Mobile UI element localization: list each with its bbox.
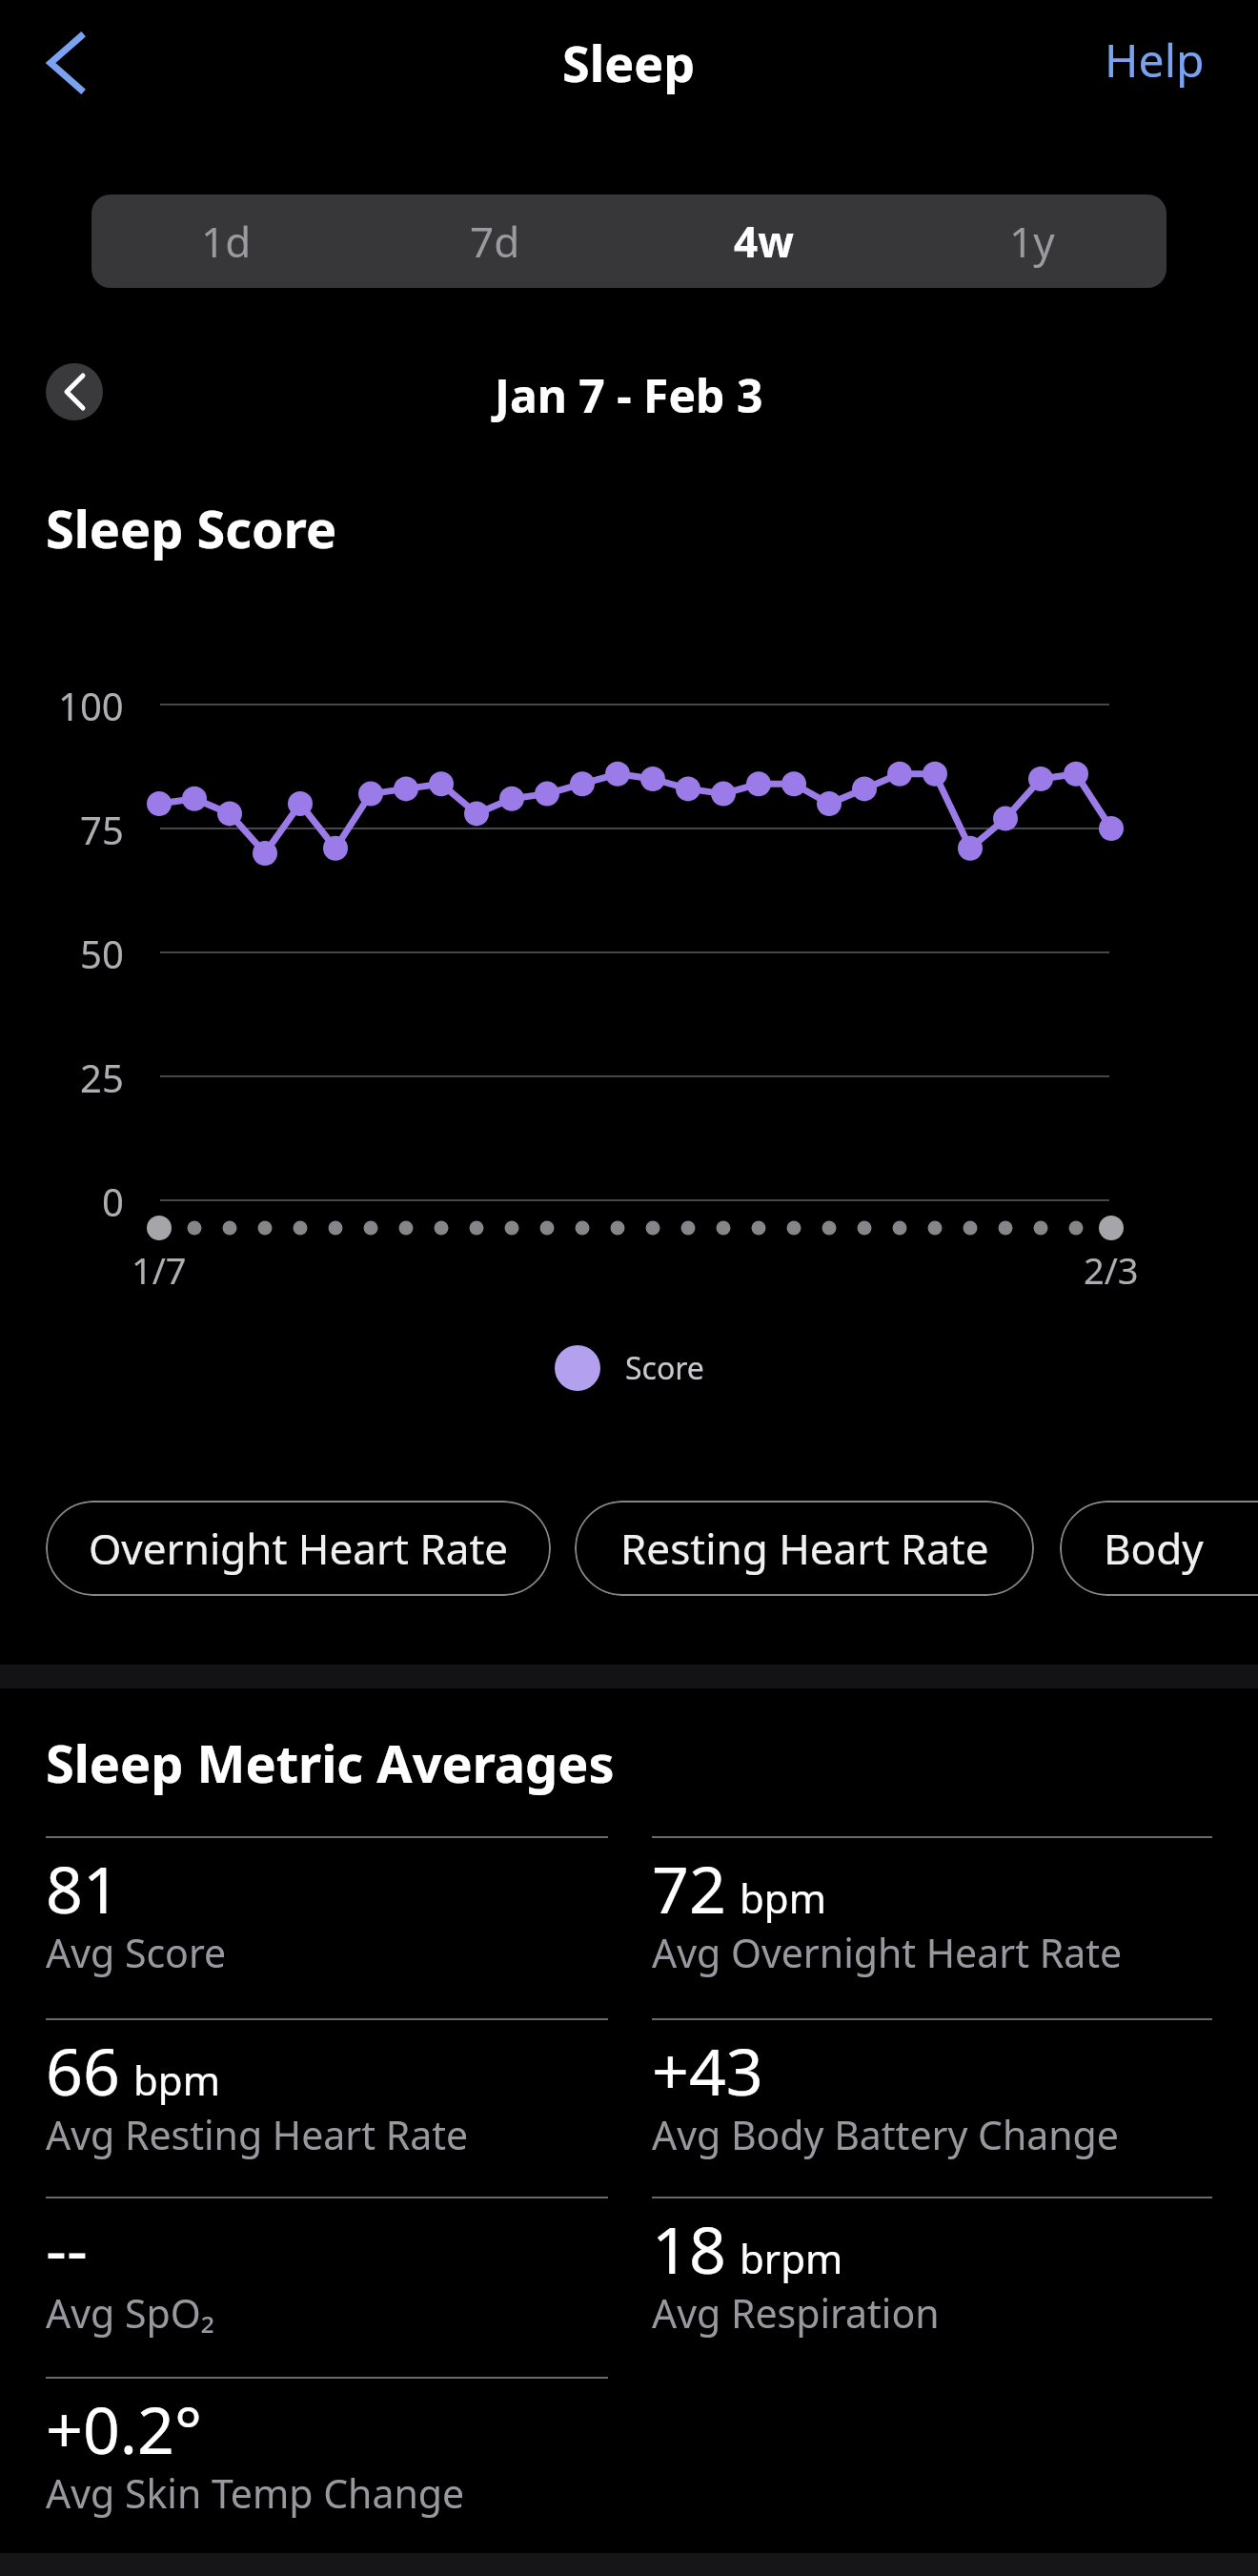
staticText: 18: [652, 2204, 726, 2293]
button[interactable]: 4w: [629, 194, 898, 288]
staticText: 100: [58, 680, 124, 729]
staticText: 0: [102, 1176, 124, 1225]
staticText: +43: [652, 2026, 763, 2115]
staticText: Score: [625, 1347, 704, 1389]
staticText: 4w: [734, 213, 794, 270]
staticText: 81: [46, 1844, 120, 1932]
staticText: Sleep Metric Averages: [46, 1728, 615, 1798]
staticText: Avg Body Battery Change: [652, 2108, 1119, 2161]
staticText: --: [46, 2204, 88, 2293]
staticText: Avg SpO₂: [46, 2286, 214, 2340]
staticText: Resting Heart Rate: [620, 1520, 989, 1577]
staticText: 50: [80, 928, 124, 977]
staticText: Avg Respiration: [652, 2286, 940, 2340]
staticText: Sleep: [562, 29, 696, 96]
staticText: Sleep Score: [46, 493, 337, 563]
staticText: 1/7: [132, 1245, 187, 1295]
staticText: Overnight Heart Rate: [89, 1520, 509, 1577]
staticText: brpm: [740, 2231, 843, 2285]
staticText: 1d: [201, 213, 252, 270]
button[interactable]: 1d: [91, 194, 360, 288]
staticText: Avg Resting Heart Rate: [46, 2108, 469, 2161]
button[interactable]: 7d: [360, 194, 629, 288]
staticText: 25: [80, 1052, 124, 1101]
staticText: 7d: [470, 213, 520, 270]
staticText: Avg Overnight Heart Rate: [652, 1926, 1123, 1979]
staticText: Avg Skin Temp Change: [46, 2466, 465, 2520]
staticText: 1y: [1009, 213, 1055, 270]
button[interactable]: [46, 363, 103, 420]
staticText: 2/3: [1084, 1245, 1139, 1295]
button[interactable]: Help: [1105, 29, 1205, 91]
staticText: 72: [652, 1844, 726, 1932]
button[interactable]: Body Battery: [1060, 1501, 1258, 1596]
button[interactable]: Resting Heart Rate: [575, 1501, 1034, 1596]
staticText: 66: [46, 2026, 120, 2115]
staticText: bpm: [740, 1871, 826, 1925]
button[interactable]: 1y: [898, 194, 1167, 288]
staticText: Avg Score: [46, 1926, 227, 1979]
button[interactable]: [29, 17, 101, 109]
staticText: Help: [1105, 29, 1205, 91]
staticText: Body Battery: [1104, 1520, 1258, 1577]
button[interactable]: Overnight Heart Rate: [46, 1501, 551, 1596]
staticText: 75: [80, 804, 124, 853]
staticText: Jan 7 - Feb 3: [495, 364, 763, 426]
staticText: +0.2°: [46, 2384, 203, 2473]
staticText: bpm: [133, 2053, 220, 2107]
